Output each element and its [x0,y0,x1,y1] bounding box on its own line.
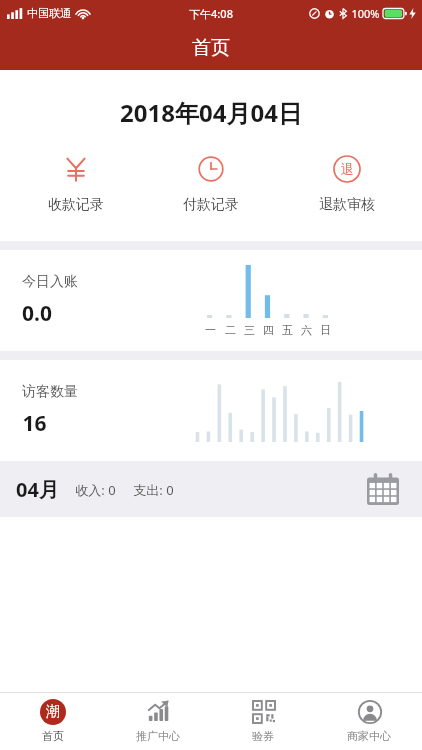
staticText: 下午4:08 [189,6,233,21]
button[interactable]: 商家中心 [316,693,422,750]
staticText: 16 [22,409,47,438]
button[interactable]: 付款记录 [151,151,271,216]
staticText: 潮 [46,703,60,721]
staticText: 付款记录 [183,196,239,214]
staticText: 中国联通 [27,6,71,20]
staticText: 二 [225,323,236,337]
staticText: 访客数量 [22,383,78,401]
button[interactable]: 04月 [0,461,422,517]
staticText: 0.0 [22,299,52,328]
staticText: 一 [205,323,216,337]
staticText: 100% [351,6,380,21]
staticText: 今日入账 [22,273,78,291]
staticText: 验券 [252,729,274,743]
button[interactable]: 今日入账 [0,250,422,351]
staticText: 收入: 0 [75,481,116,499]
button[interactable]: 收款记录 [16,151,136,216]
staticText: 收款记录 [48,196,104,214]
staticText: 2018年04月04日 [120,96,302,129]
staticText: 04月 [16,476,59,503]
staticText: 推广中心 [136,729,180,743]
staticText: 首页 [42,729,64,743]
staticText: 四 [263,323,274,337]
staticText: 三 [244,323,255,337]
button[interactable]: 潮 [0,693,105,750]
staticText: 日 [320,323,331,337]
staticText: 支出: 0 [133,481,174,499]
other: Calendar [367,473,399,505]
button[interactable]: 退 [287,151,407,216]
button[interactable]: 访客数量 [0,360,422,461]
button[interactable]: 验券 [210,693,316,750]
staticText: 退 [341,161,354,177]
staticText: 首页 [192,36,230,60]
staticText: 六 [301,323,312,337]
button[interactable]: 推广中心 [105,693,210,750]
staticText: 退款审核 [319,196,375,214]
staticText: 商家中心 [347,729,391,743]
staticText: 五 [282,323,293,337]
